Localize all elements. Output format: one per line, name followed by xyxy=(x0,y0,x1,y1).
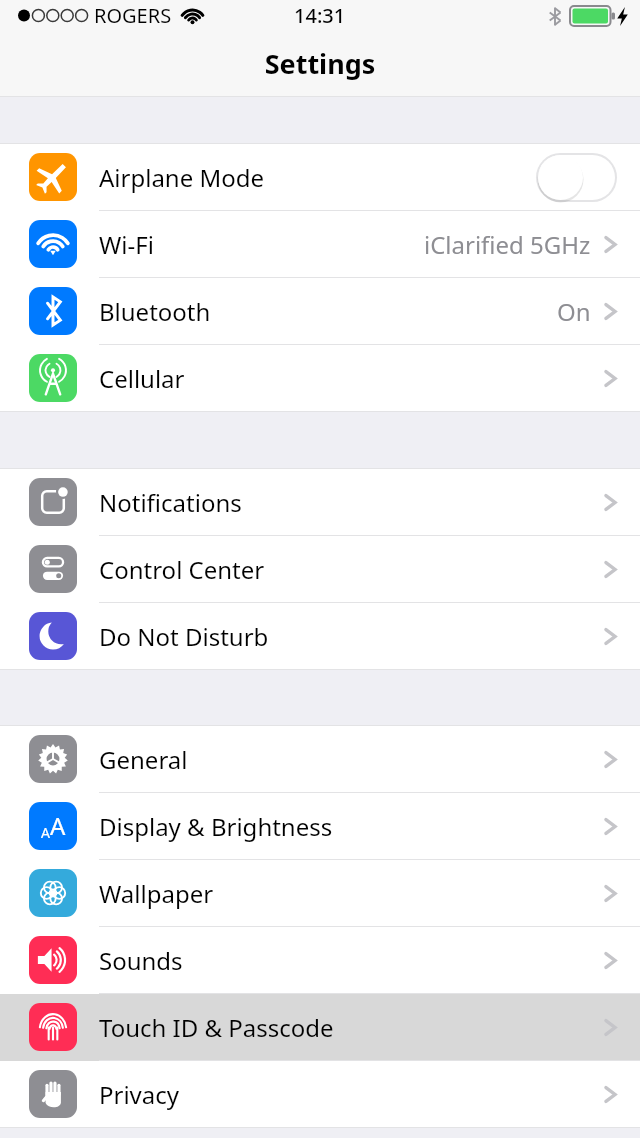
button[interactable]: Notifications xyxy=(0,469,640,536)
button[interactable]: Control Center xyxy=(0,536,640,603)
staticText: Privacy xyxy=(99,1078,180,1111)
staticText: iClarified 5GHz xyxy=(424,228,591,261)
staticText: Notifications xyxy=(99,486,242,519)
staticText: Wi-Fi xyxy=(99,228,154,261)
button[interactable]: Do Not Disturb xyxy=(0,603,640,669)
staticText: 14:31 xyxy=(294,2,346,29)
staticText: Cellular xyxy=(99,362,185,395)
button[interactable]: Wi-Fi xyxy=(0,211,640,278)
staticText: A xyxy=(50,809,66,842)
staticText: Touch ID & Passcode xyxy=(99,1011,334,1044)
button[interactable]: A xyxy=(0,793,640,860)
staticText: Control Center xyxy=(99,553,265,586)
button[interactable]: Airplane Mode xyxy=(0,144,640,211)
staticText: General xyxy=(99,743,188,776)
staticText: Airplane Mode xyxy=(99,161,265,194)
staticText: A xyxy=(41,823,50,842)
staticText: Do Not Disturb xyxy=(99,620,269,653)
button[interactable]: Sounds xyxy=(0,927,640,994)
staticText: Bluetooth xyxy=(99,295,211,328)
button[interactable]: General xyxy=(0,726,640,793)
staticText: ROGERS xyxy=(94,2,172,29)
button[interactable]: Bluetooth xyxy=(0,278,640,345)
staticText: Sounds xyxy=(99,944,183,977)
staticText: On xyxy=(557,295,591,328)
button[interactable]: Privacy xyxy=(0,1061,640,1127)
button[interactable]: Wallpaper xyxy=(0,860,640,927)
staticText: Display & Brightness xyxy=(99,810,333,843)
staticText: Wallpaper xyxy=(99,877,214,910)
button[interactable]: Cellular xyxy=(0,345,640,411)
button[interactable]: Touch ID & Passcode xyxy=(0,994,640,1061)
staticText: Settings xyxy=(0,45,640,82)
